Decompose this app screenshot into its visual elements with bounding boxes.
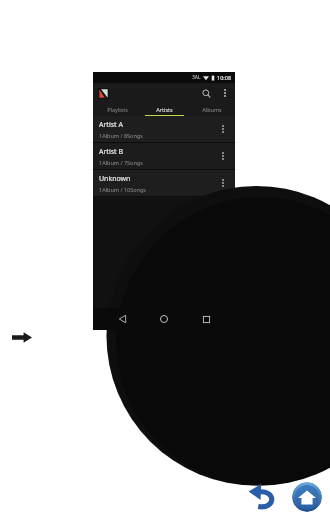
button[interactable]: App logo bbox=[98, 88, 109, 99]
staticText: Artists bbox=[156, 106, 173, 113]
button[interactable]: More options for Unknown bbox=[217, 173, 229, 193]
button[interactable]: Home bbox=[292, 482, 322, 512]
button[interactable]: Unknown bbox=[93, 170, 235, 196]
other: Next step arrow bbox=[12, 331, 32, 344]
staticText: Artist A bbox=[99, 120, 123, 130]
staticText: 1Album / 8Songs bbox=[99, 132, 143, 139]
button[interactable]: Albums bbox=[188, 103, 235, 116]
button[interactable]: Artist B bbox=[93, 143, 235, 169]
staticText: Playlists bbox=[107, 106, 128, 113]
button[interactable]: More options for Artist B bbox=[217, 146, 229, 166]
button[interactable]: More options bbox=[219, 87, 231, 99]
button[interactable]: Back bbox=[109, 308, 135, 330]
button[interactable]: Home bbox=[151, 308, 177, 330]
button[interactable]: More options for Artist A bbox=[217, 119, 229, 139]
staticText: Artist B bbox=[99, 147, 123, 157]
staticText: 10:08 bbox=[217, 74, 232, 81]
staticText: 3AL bbox=[192, 74, 201, 81]
staticText: Albums bbox=[202, 106, 222, 113]
button[interactable]: Playlists bbox=[93, 103, 141, 116]
staticText: 1Album / 7Songs bbox=[99, 159, 143, 166]
button[interactable]: Back bbox=[248, 482, 278, 512]
button[interactable]: Search bbox=[200, 87, 212, 99]
button[interactable]: Recent apps bbox=[193, 308, 219, 330]
staticText: 1Album / 10Songs bbox=[99, 186, 146, 193]
staticText: Unknown bbox=[99, 174, 131, 184]
button[interactable]: Artists bbox=[141, 103, 188, 116]
button[interactable]: Artist A bbox=[93, 116, 235, 142]
